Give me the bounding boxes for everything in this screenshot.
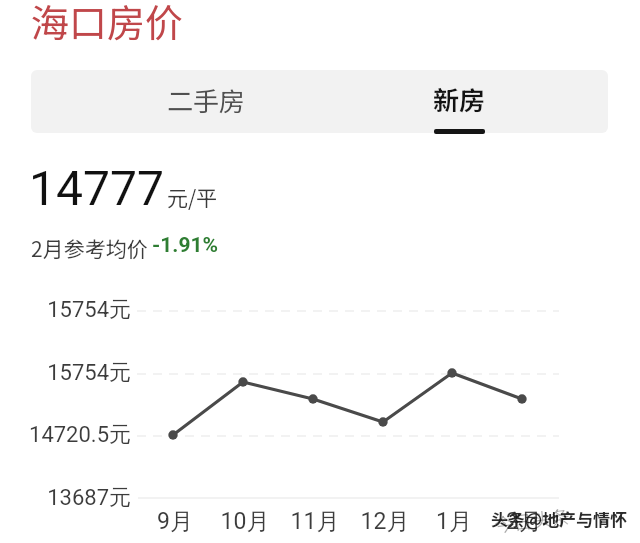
staticText: 13687元 [6, 484, 131, 512]
staticText: 今日头条 [493, 501, 572, 539]
staticText: 9月 [140, 507, 210, 536]
staticText: 12月 [350, 507, 420, 536]
staticText: 二手房 [167, 81, 246, 119]
staticText: 15754元 [6, 296, 131, 324]
staticText: 海口房价 [31, 0, 184, 48]
button[interactable]: 新房 [351, 70, 608, 133]
staticText: 2月参考均价 [31, 233, 148, 263]
staticText: 头条@地产与情怀 [491, 506, 628, 531]
staticText: 1月 [419, 507, 489, 536]
staticText: 15754元 [6, 359, 131, 387]
staticText: 11月 [280, 507, 350, 536]
button[interactable]: 二手房 [31, 70, 351, 133]
staticText: 2月 [489, 507, 559, 536]
staticText: 元/平 [167, 182, 218, 212]
staticText: 新房 [433, 80, 486, 118]
staticText: 10月 [210, 507, 280, 536]
staticText: 14720.5元 [6, 421, 131, 449]
other: 新房均价走势折线图 [0, 0, 640, 543]
staticText: 14777 [29, 160, 164, 216]
staticText: -1.91% [152, 233, 219, 258]
